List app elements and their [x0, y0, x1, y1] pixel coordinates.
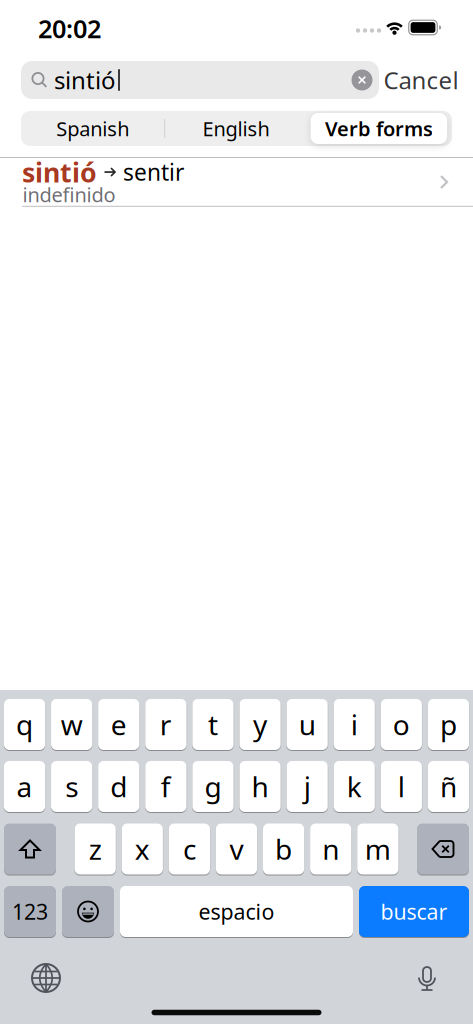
button[interactable]: d: [98, 761, 139, 812]
staticText: x: [135, 830, 150, 868]
button[interactable]: l: [381, 761, 422, 812]
button[interactable]: Next keyboard: [31, 963, 61, 993]
staticText: sintió: [54, 64, 116, 96]
staticText: t: [208, 706, 218, 743]
staticText: sintió: [22, 154, 97, 190]
staticText: indefinido: [22, 181, 115, 208]
button[interactable]: f: [145, 761, 186, 812]
button[interactable]: b: [263, 823, 304, 874]
button[interactable]: m: [357, 823, 398, 874]
staticText: p: [440, 706, 457, 743]
staticText: q: [16, 706, 33, 743]
staticText: j: [304, 768, 311, 805]
staticText: r: [160, 706, 172, 743]
button[interactable]: j: [287, 761, 328, 812]
button[interactable]: r: [145, 699, 186, 750]
staticText: espacio: [198, 897, 274, 926]
staticText: Spanish: [56, 115, 129, 142]
staticText: Cancel: [383, 64, 458, 96]
staticText: k: [347, 768, 362, 805]
staticText: Verb forms: [325, 115, 433, 142]
button[interactable]: o: [381, 699, 422, 750]
button[interactable]: Spanish: [28, 112, 158, 145]
button[interactable]: Shift: [4, 823, 56, 874]
button[interactable]: espacio: [120, 886, 353, 937]
staticText: 123: [12, 897, 48, 926]
staticText: n: [322, 830, 339, 868]
button[interactable]: Verb forms: [311, 113, 447, 144]
button[interactable]: English: [171, 112, 301, 145]
button[interactable]: Emoji: [62, 886, 114, 937]
button[interactable]: p: [428, 699, 469, 750]
button[interactable]: ñ: [428, 761, 469, 812]
button[interactable]: Search: [21, 61, 379, 99]
button[interactable]: Dictation: [415, 965, 439, 991]
staticText: sentir: [123, 157, 184, 187]
button[interactable]: g: [192, 761, 234, 812]
staticText: z: [89, 830, 102, 868]
staticText: o: [393, 706, 410, 743]
staticText: y: [253, 706, 267, 743]
staticText: h: [252, 768, 269, 805]
staticText: b: [275, 830, 292, 868]
staticText: i: [351, 706, 358, 743]
button[interactable]: z: [75, 823, 116, 874]
staticText: m: [365, 830, 391, 868]
staticText: e: [111, 706, 127, 743]
button[interactable]: t: [192, 699, 234, 750]
button[interactable]: e: [98, 699, 139, 750]
button[interactable]: s: [51, 761, 92, 812]
button[interactable]: Cancel: [383, 61, 459, 99]
button[interactable]: i: [334, 699, 375, 750]
button[interactable]: c: [169, 823, 210, 874]
button[interactable]: w: [51, 699, 92, 750]
button[interactable]: k: [334, 761, 375, 812]
button[interactable]: buscar: [359, 886, 469, 937]
button[interactable]: a: [4, 761, 45, 812]
staticText: s: [65, 768, 78, 805]
button[interactable]: y: [239, 699, 281, 750]
staticText: f: [161, 768, 171, 805]
button[interactable]: n: [310, 823, 351, 874]
staticText: buscar: [380, 897, 447, 926]
staticText: l: [398, 768, 405, 805]
staticText: d: [110, 768, 127, 805]
button[interactable]: h: [239, 761, 281, 812]
staticText: a: [17, 768, 33, 805]
button[interactable]: 123: [4, 886, 56, 937]
staticText: ñ: [440, 768, 457, 805]
staticText: 20:02: [38, 12, 101, 45]
staticText: g: [204, 768, 221, 805]
button[interactable]: v: [216, 823, 257, 874]
staticText: w: [61, 706, 83, 743]
button[interactable]: u: [287, 699, 328, 750]
staticText: u: [299, 706, 316, 743]
staticText: c: [183, 830, 196, 868]
button[interactable]: x: [122, 823, 163, 874]
staticText: v: [229, 830, 243, 868]
staticText: English: [202, 115, 269, 142]
button[interactable]: q: [4, 699, 45, 750]
button[interactable]: Delete: [417, 823, 469, 874]
button[interactable]: Clear text: [351, 69, 372, 90]
button[interactable]: sintió: [0, 158, 473, 206]
